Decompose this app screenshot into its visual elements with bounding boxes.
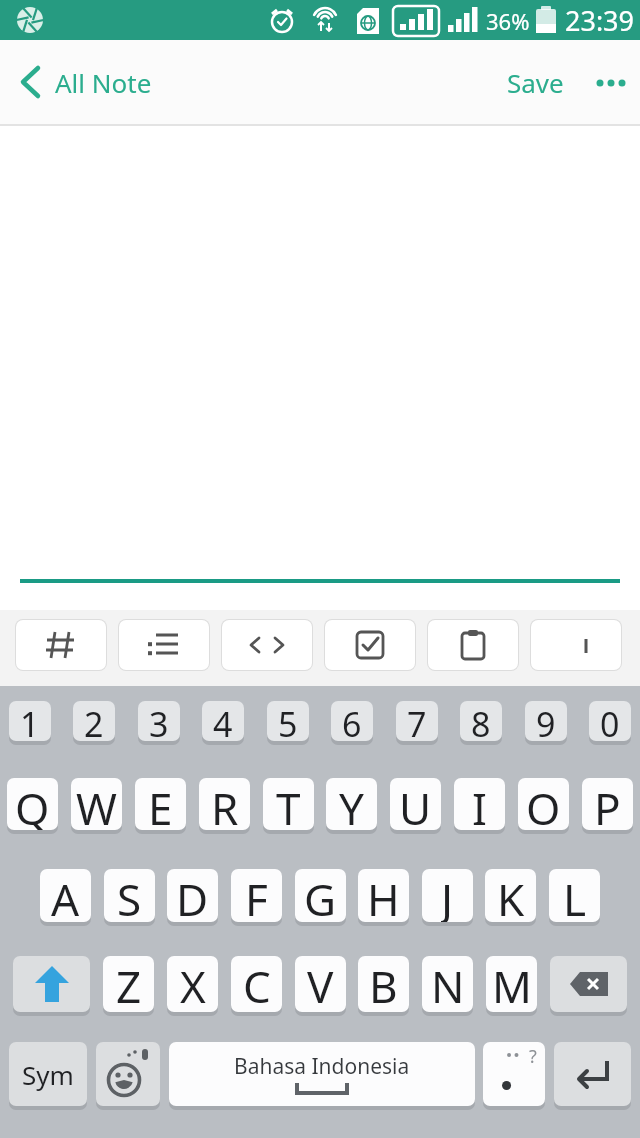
staticText: S xyxy=(117,869,142,922)
button[interactable] xyxy=(222,620,312,670)
staticText: All Note xyxy=(55,65,152,100)
staticText: 1 xyxy=(20,701,40,741)
staticText: I xyxy=(472,778,487,830)
staticText: C xyxy=(243,956,271,1012)
staticText: E xyxy=(148,778,173,830)
button[interactable]: P xyxy=(582,778,633,830)
button[interactable]: Z xyxy=(103,956,154,1012)
staticText: H xyxy=(367,869,400,922)
button[interactable]: V xyxy=(295,956,346,1012)
button[interactable]: W xyxy=(71,778,122,830)
staticText: Bahasa Indonesia xyxy=(234,1052,410,1081)
button[interactable] xyxy=(550,956,627,1012)
button[interactable]: E xyxy=(135,778,186,830)
button[interactable]: B xyxy=(358,956,409,1012)
staticText: 8 xyxy=(471,701,491,741)
staticText: 2 xyxy=(84,701,104,741)
button[interactable] xyxy=(16,620,106,670)
button[interactable]: 0 xyxy=(589,701,631,741)
staticText: Sym xyxy=(22,1057,74,1092)
staticText: U xyxy=(399,778,432,830)
button[interactable]: All Note xyxy=(0,62,152,102)
staticText: R xyxy=(211,778,239,830)
button[interactable]: X xyxy=(167,956,218,1012)
button[interactable] xyxy=(570,68,640,98)
button[interactable] xyxy=(96,1042,160,1106)
staticText: 6 xyxy=(342,701,362,741)
staticText: X xyxy=(180,956,206,1012)
staticText: Y xyxy=(339,778,364,830)
button[interactable]: F xyxy=(231,869,282,922)
button[interactable]: Save xyxy=(501,65,570,100)
button[interactable]: D xyxy=(167,869,218,922)
button[interactable]: J xyxy=(422,869,473,922)
staticText: T xyxy=(276,778,301,830)
button[interactable] xyxy=(428,620,518,670)
button[interactable]: ? xyxy=(483,1042,545,1106)
staticText: 3 xyxy=(149,701,169,741)
staticText: 0 xyxy=(600,701,620,741)
button[interactable]: 2 xyxy=(73,701,115,741)
staticText: A xyxy=(51,869,80,922)
button[interactable]: H xyxy=(358,869,409,922)
button[interactable]: Sym xyxy=(9,1042,87,1106)
staticText: 36% xyxy=(486,6,530,36)
button[interactable]: K xyxy=(485,869,536,922)
button[interactable]: L xyxy=(549,869,600,922)
button[interactable]: I xyxy=(454,778,505,830)
staticText: L xyxy=(563,869,587,922)
button[interactable]: R xyxy=(199,778,250,830)
button[interactable]: O xyxy=(518,778,569,830)
button[interactable]: 1 xyxy=(9,701,51,741)
staticText: O xyxy=(526,778,561,830)
button[interactable] xyxy=(531,620,621,670)
button[interactable] xyxy=(325,620,415,670)
staticText: 23:39 xyxy=(565,2,635,39)
staticText: ? xyxy=(529,1044,537,1069)
staticText: D xyxy=(176,869,209,922)
staticText: F xyxy=(245,869,268,922)
button[interactable]: U xyxy=(390,778,441,830)
button[interactable]: Q xyxy=(7,778,58,830)
staticText: G xyxy=(304,869,337,922)
button[interactable]: Bahasa Indonesia xyxy=(169,1042,475,1106)
staticText: B xyxy=(369,956,398,1012)
staticText: 5 xyxy=(278,701,298,741)
button[interactable]: A xyxy=(40,869,91,922)
button[interactable]: S xyxy=(104,869,155,922)
button[interactable]: 3 xyxy=(138,701,180,741)
button[interactable]: C xyxy=(231,956,282,1012)
staticText: Save xyxy=(507,65,564,100)
staticText: J xyxy=(441,869,454,922)
button[interactable]: Y xyxy=(326,778,377,830)
button[interactable]: N xyxy=(422,956,473,1012)
button[interactable]: 4 xyxy=(202,701,244,741)
button[interactable]: T xyxy=(263,778,314,830)
staticText: 4 xyxy=(213,701,233,741)
staticText: M xyxy=(492,956,532,1012)
button[interactable] xyxy=(119,620,209,670)
staticText: K xyxy=(497,869,525,922)
button[interactable]: 8 xyxy=(460,701,502,741)
staticText: 7 xyxy=(407,701,427,741)
staticText: N xyxy=(431,956,465,1012)
staticText: P xyxy=(594,778,621,830)
button[interactable]: 6 xyxy=(331,701,373,741)
button[interactable]: 7 xyxy=(396,701,438,741)
button[interactable]: 9 xyxy=(525,701,567,741)
staticText: Q xyxy=(15,778,50,830)
staticText: Z xyxy=(116,956,142,1012)
button[interactable]: G xyxy=(295,869,346,922)
button[interactable]: M xyxy=(486,956,537,1012)
button[interactable] xyxy=(554,1042,631,1106)
button[interactable]: 5 xyxy=(267,701,309,741)
staticText: 9 xyxy=(536,701,556,741)
staticText: V xyxy=(307,956,334,1012)
staticText: W xyxy=(76,778,117,830)
button[interactable] xyxy=(13,956,90,1012)
